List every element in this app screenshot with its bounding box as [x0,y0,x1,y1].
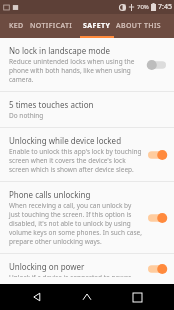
button[interactable]: Toggle off [146,58,168,72]
button[interactable]: Unlocking on power [0,254,174,284]
staticText: No lock in landscape mode [9,45,111,56]
staticText: 5 times touches action [9,99,94,110]
staticText: Enable to unlock this app's lock by touc… [9,147,142,174]
button[interactable]: Toggle on [146,211,168,225]
staticText: Unlock if a device is connected to power… [9,273,132,277]
button[interactable]: Back [24,284,50,310]
button[interactable]: No lock in landscape mode [0,38,174,92]
button[interactable]: NOTIFICATION [30,14,78,38]
staticText: Phone calls unlocking [9,189,91,200]
button[interactable]: Home [74,284,100,310]
staticText: KED [9,21,24,31]
button[interactable]: Recents [124,284,150,310]
button[interactable]: Toggle on [146,148,168,162]
button[interactable]: ABOUT THIS APP [116,14,174,38]
staticText: ABOUT THIS APP [116,21,174,31]
staticText: NOTIFICATION [30,21,78,31]
button[interactable]: SAFETY [78,14,116,38]
staticText: Unlocking on power [9,261,85,272]
button[interactable]: Phone calls unlocking [0,182,174,254]
staticText: 7:45 [158,2,172,12]
staticText: SAFETY [83,21,111,31]
button[interactable]: 5 times touches action [0,92,174,128]
button[interactable]: KED [0,14,30,38]
button[interactable]: Unlocking while device locked [0,128,174,182]
staticText: When receiving a call, you can unlock by… [9,201,142,246]
staticText: Do nothing [9,111,44,120]
staticText: Unlocking while device locked [9,135,122,146]
button[interactable]: Toggle on [146,262,168,276]
staticText: Reduce unintended locks when using the p… [9,57,142,84]
staticText: 70% [137,3,149,11]
